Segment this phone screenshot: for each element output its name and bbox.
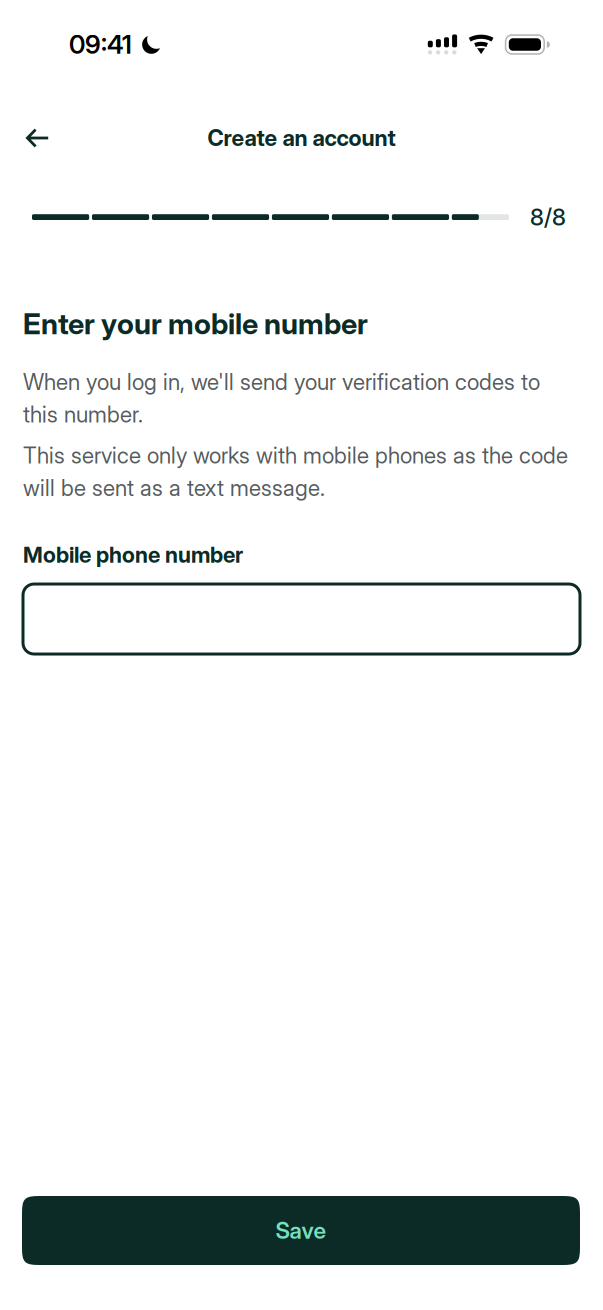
staticText: This service only works with mobile phon… [23,442,568,501]
staticText: 09:41 [69,29,132,60]
staticText: Enter your mobile number [23,306,368,341]
staticText: Save [275,1217,326,1244]
staticText: 8/8 [530,203,566,231]
staticText: Create an account [207,124,395,151]
staticText: When you log in, we'll send your verific… [23,368,540,428]
button[interactable]: Back [16,116,60,160]
staticText: Mobile phone number [23,541,243,568]
button[interactable]: Save [22,1196,580,1265]
